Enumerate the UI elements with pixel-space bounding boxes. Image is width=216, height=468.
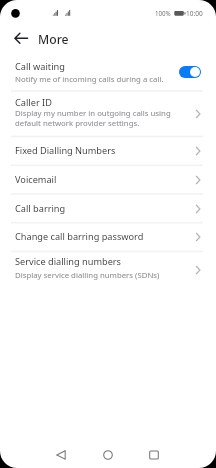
staticText: Fixed Dialling Numbers (15, 144, 116, 157)
button[interactable]: Caller ID (0, 91, 216, 137)
staticText: More (38, 31, 69, 48)
staticText: Change call barring password (15, 230, 144, 243)
button[interactable]: Voicemail (0, 165, 216, 194)
staticText: Display service dialling numbers (SDNs) (15, 270, 160, 281)
staticText: Voicemail (15, 173, 57, 186)
button[interactable]: Call waiting switch, on (179, 66, 201, 78)
staticText: Call barring (15, 202, 66, 215)
staticText: Caller ID (15, 96, 52, 109)
button[interactable]: Change call barring password (0, 222, 216, 251)
button[interactable]: Service dialling numbers (0, 251, 216, 288)
staticText: 100% (155, 8, 171, 18)
button[interactable]: Recents (140, 441, 168, 468)
staticText: Service dialling numbers (15, 255, 122, 268)
button[interactable]: Back (47, 441, 75, 468)
button[interactable]: Back (7, 24, 35, 52)
button[interactable]: Call waiting (0, 52, 216, 91)
staticText: default network provider settings. (15, 118, 140, 129)
button[interactable]: Fixed Dialling Numbers (0, 136, 216, 165)
staticText: Notify me of incoming calls during a cal… (15, 74, 164, 85)
staticText: 10:00 (186, 8, 203, 18)
staticText: Call waiting (15, 60, 65, 73)
staticText: Display my number in outgoing calls usin… (15, 108, 171, 119)
button[interactable]: Call barring (0, 194, 216, 223)
button[interactable]: Home (94, 441, 122, 468)
